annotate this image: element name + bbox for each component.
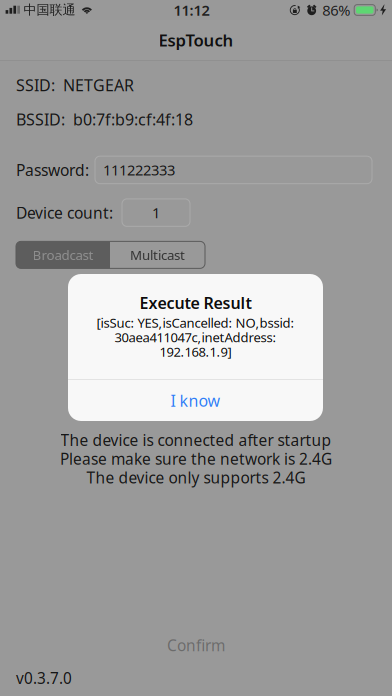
staticText: 中国联通 [23,2,75,18]
staticText: Confirm [167,635,225,656]
staticText: SSID: NETGEAR [16,74,134,96]
staticText: 86% [322,0,350,20]
staticText: Password: [16,159,89,180]
staticText: 11:12 [173,0,209,20]
staticText: Multicast [130,246,185,264]
button[interactable]: Broadcast [16,241,110,268]
staticText: The device only supports 2.4G [86,467,305,488]
staticText: Broadcast [32,246,93,264]
staticText: BSSID: b0:7f:b9:cf:4f:18 [16,108,193,130]
staticText: Device count: [16,202,113,223]
staticText: The device is connected after startup [60,429,331,450]
staticText: 111222333 [103,160,175,180]
staticText: 30aea411047c,inetAddress: [114,328,276,346]
staticText: Execute Result [139,292,251,314]
staticText: 192.168.1.9] [159,343,231,361]
staticText: v0.3.7.0 [16,668,72,689]
button[interactable]: Confirm [0,616,392,662]
staticText: EspTouch [158,29,233,51]
button[interactable]: Multicast [110,241,205,268]
staticText: 1 [152,203,160,223]
button[interactable]: I know [68,380,323,421]
staticText: [isSuc: YES,isCancelled: NO,bssid: [96,314,294,332]
staticText: I know [170,390,220,411]
staticText: Please make sure the network is 2.4G [60,448,332,469]
